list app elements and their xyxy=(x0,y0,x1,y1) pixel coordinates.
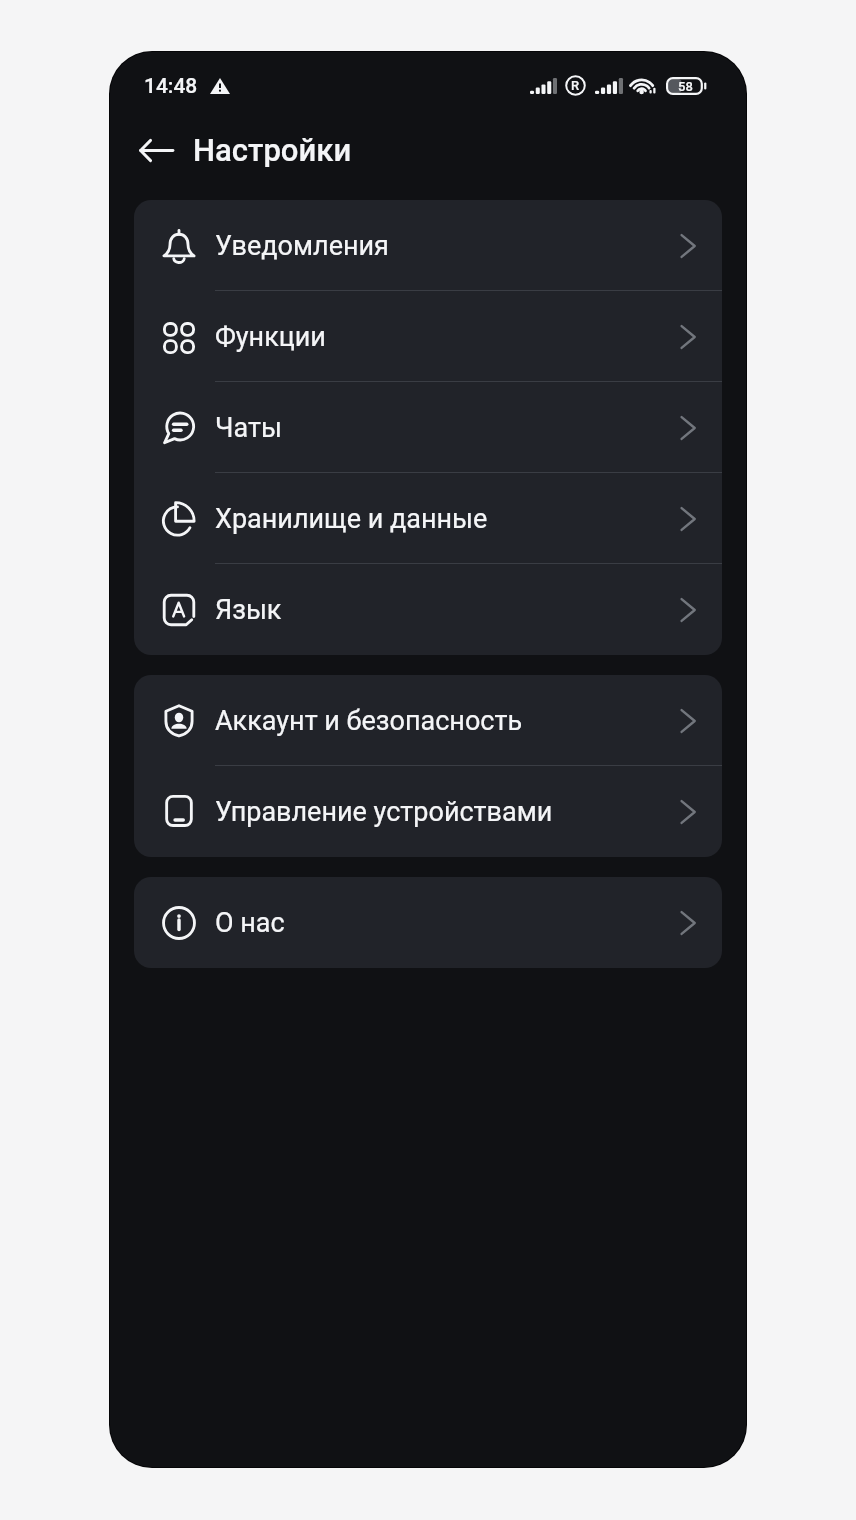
button[interactable]: О нас xyxy=(134,877,722,968)
staticText: Функции xyxy=(215,321,326,353)
button[interactable]: Уведомления xyxy=(134,200,722,291)
staticText: О нас xyxy=(215,907,285,939)
staticText: Хранилище и данные xyxy=(215,503,488,535)
button[interactable]: Назад xyxy=(132,126,180,174)
button[interactable]: Аккаунт и безопасность xyxy=(134,675,722,766)
button[interactable]: Хранилище и данные xyxy=(134,473,722,564)
button[interactable]: Язык xyxy=(134,564,722,655)
staticText: Аккаунт и безопасность xyxy=(215,705,523,737)
button[interactable]: Функции xyxy=(134,291,722,382)
staticText: Чаты xyxy=(215,412,282,444)
staticText: Язык xyxy=(215,594,282,626)
staticText: R xyxy=(571,78,580,93)
staticText: Уведомления xyxy=(215,230,389,262)
button[interactable]: Чаты xyxy=(134,382,722,473)
staticText: 58 xyxy=(678,79,693,94)
button[interactable]: Управление устройствами xyxy=(134,766,722,857)
staticText: 14:48 xyxy=(144,74,198,99)
staticText: Настройки xyxy=(193,132,352,168)
staticText: Управление устройствами xyxy=(215,796,553,828)
